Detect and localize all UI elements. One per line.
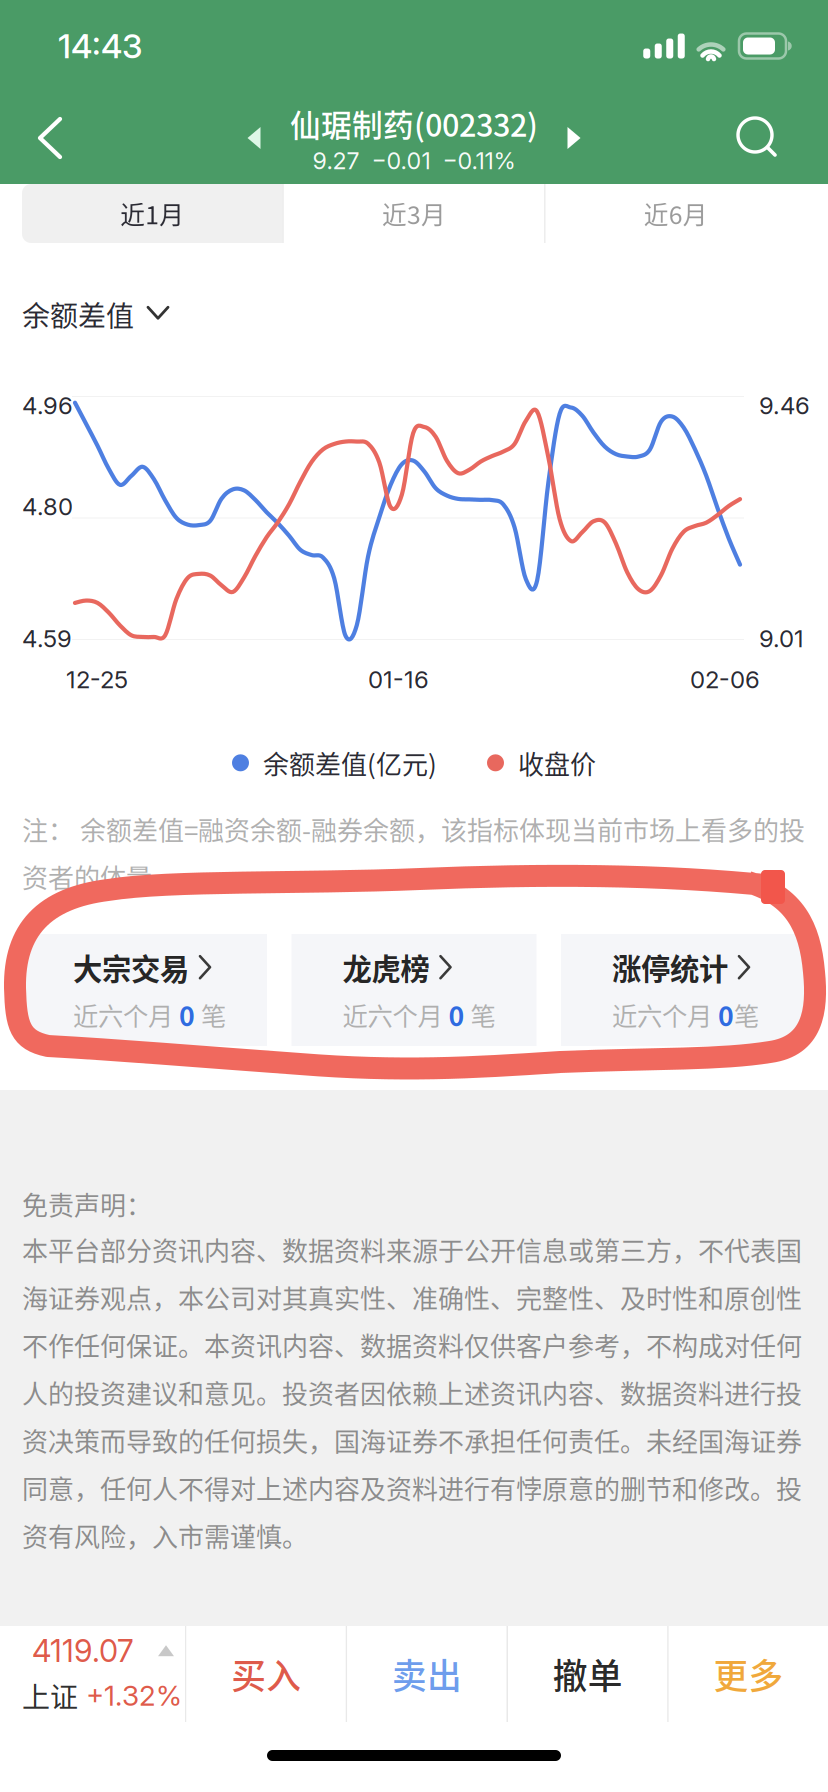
staticText: 近3月 <box>382 196 446 231</box>
staticText: 龙虎榜 <box>342 946 429 988</box>
staticText: 免责声明： <box>22 1185 152 1223</box>
staticText: 4.80 <box>22 492 73 521</box>
staticText: 9.27 −0.01 −0.11% <box>312 147 515 175</box>
button[interactable]: 龙虎榜 <box>291 934 536 1046</box>
staticText: 笔 <box>734 996 759 1033</box>
staticText: 0 <box>718 995 734 1034</box>
staticText: +1.32% <box>86 1679 182 1712</box>
staticText: 更多 <box>713 1649 783 1699</box>
staticText: 近六个月 <box>342 996 448 1033</box>
staticText: 4.59 <box>22 624 72 653</box>
button[interactable]: 上一只 <box>247 126 261 150</box>
staticText: 卖出 <box>392 1649 462 1699</box>
staticText: 撤单 <box>553 1649 623 1699</box>
staticText: 收盘价 <box>518 744 596 782</box>
staticText: 9.46 <box>759 391 810 420</box>
staticText: 大宗交易 <box>73 946 189 988</box>
staticText: 近6月 <box>644 196 708 231</box>
staticText: 本平台部分资讯内容、数据资料来源于公开信息或第三方，不代表国海证券观点，本公司对… <box>22 1231 802 1554</box>
staticText: 注： 余额差值=融资余额-融券余额，该指标体现当前市场上看多的投资者的体量。 <box>22 810 805 895</box>
staticText: 02-06 <box>690 665 760 694</box>
staticText: 笔 <box>464 996 495 1033</box>
button[interactable]: 搜索 <box>714 92 828 184</box>
staticText: 0 <box>448 995 464 1034</box>
button[interactable]: 近6月 <box>546 184 806 243</box>
button[interactable]: 涨停统计 <box>561 934 806 1046</box>
staticText: 涨停统计 <box>612 946 728 988</box>
staticText: 0 <box>179 995 195 1034</box>
staticText: 近六个月 <box>73 996 179 1033</box>
staticText: 近六个月 <box>612 996 718 1033</box>
staticText: 近1月 <box>120 196 184 231</box>
staticText: 笔 <box>195 996 226 1033</box>
staticText: 9.01 <box>759 624 804 653</box>
button[interactable]: 买入 <box>186 1626 346 1722</box>
button[interactable]: 返回 <box>0 92 88 184</box>
staticText: 14:43 <box>58 26 142 66</box>
staticText: 4.96 <box>22 391 73 420</box>
button[interactable]: 近1月 <box>22 184 282 243</box>
staticText: 上证 <box>22 1675 78 1716</box>
button[interactable]: 切换指标 <box>146 298 170 330</box>
button[interactable]: 4119.07 <box>0 1626 185 1722</box>
button[interactable]: 近3月 <box>284 184 544 243</box>
staticText: 01-16 <box>368 665 429 694</box>
button[interactable]: 卖出 <box>347 1626 506 1722</box>
button[interactable]: 下一只 <box>567 126 581 150</box>
button[interactable]: 大宗交易 <box>22 934 267 1046</box>
staticText: 仙琚制药(002332) <box>290 101 538 146</box>
staticText: 买入 <box>231 1649 301 1699</box>
button[interactable]: 更多 <box>669 1626 828 1722</box>
staticText: 余额差值 <box>22 294 134 334</box>
button[interactable]: 撤单 <box>508 1626 667 1722</box>
staticText: 4119.07 <box>32 1632 134 1669</box>
staticText: 12-25 <box>66 665 128 694</box>
staticText: 余额差值(亿元) <box>263 744 437 782</box>
